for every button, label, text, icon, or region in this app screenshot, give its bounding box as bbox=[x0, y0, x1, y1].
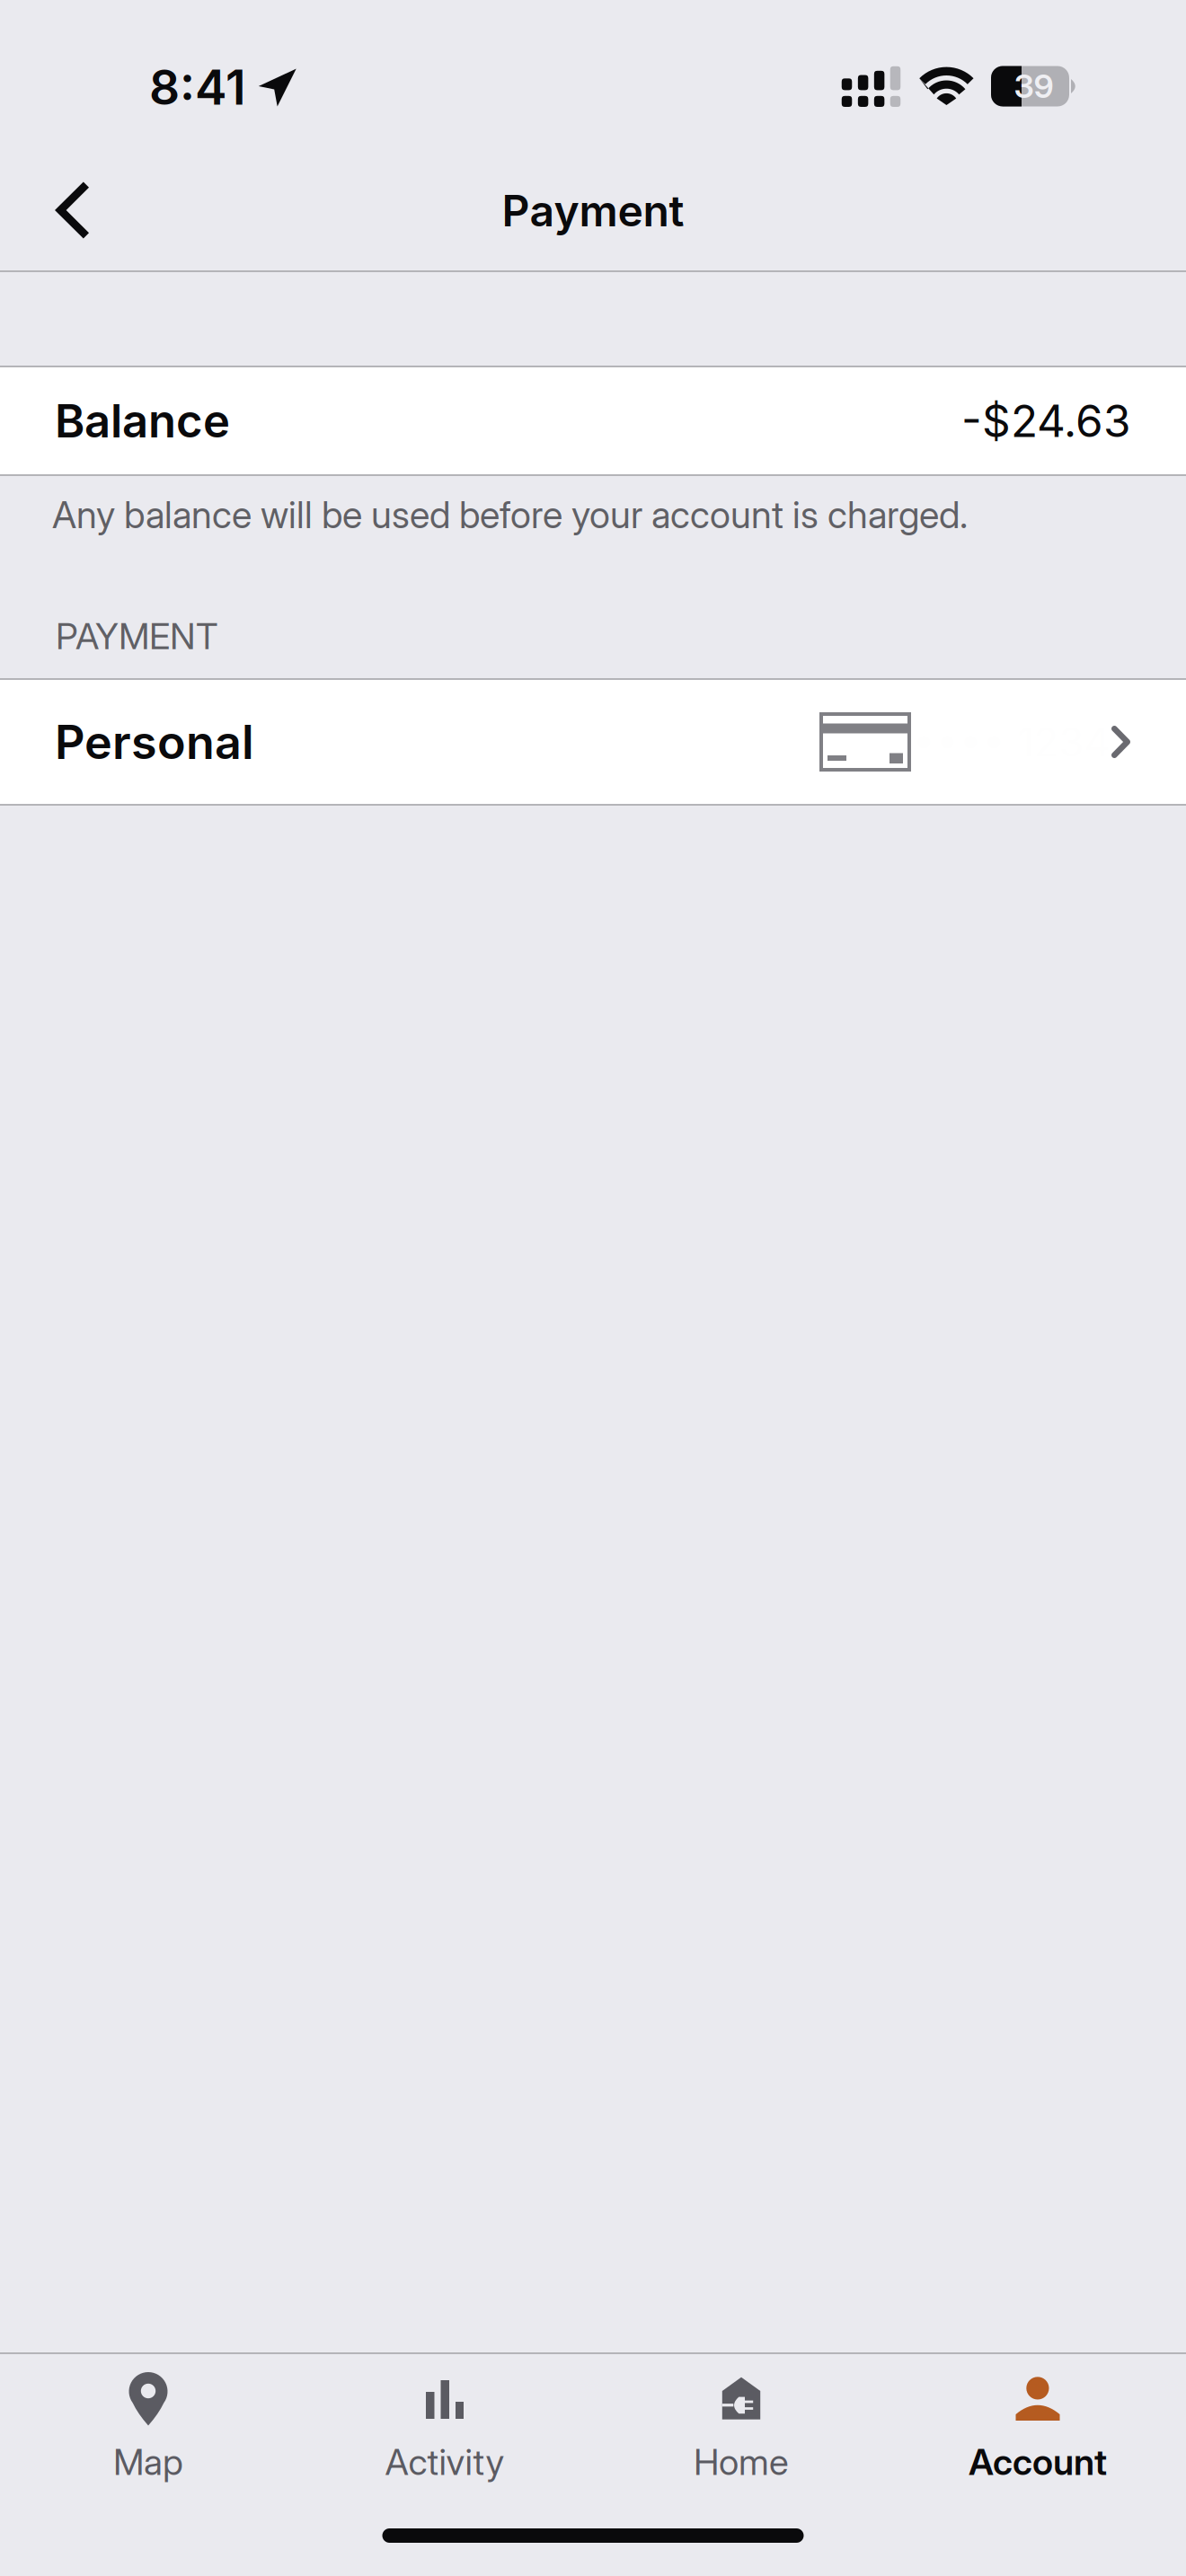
button[interactable]: Map bbox=[0, 2354, 296, 2490]
staticText: Personal bbox=[55, 714, 254, 770]
button[interactable]: Activity bbox=[296, 2354, 593, 2490]
staticText: Activity bbox=[385, 2440, 504, 2484]
staticText: Home bbox=[694, 2440, 789, 2484]
staticText: 8:41 bbox=[149, 58, 246, 116]
staticText: 39 bbox=[1014, 67, 1053, 106]
button[interactable]: Home bbox=[593, 2354, 889, 2490]
button[interactable]: Account bbox=[889, 2354, 1186, 2490]
button[interactable]: Personal bbox=[0, 680, 1186, 804]
staticText: -$24.63 bbox=[961, 394, 1130, 448]
button[interactable]: Back bbox=[16, 154, 128, 266]
staticText: Balance bbox=[55, 393, 230, 448]
staticText: Any balance will be used before your acc… bbox=[52, 492, 968, 537]
staticText: Map bbox=[113, 2440, 183, 2484]
staticText: Payment bbox=[502, 185, 684, 237]
staticText: PAYMENT bbox=[56, 614, 218, 658]
staticText: Account bbox=[969, 2440, 1107, 2484]
